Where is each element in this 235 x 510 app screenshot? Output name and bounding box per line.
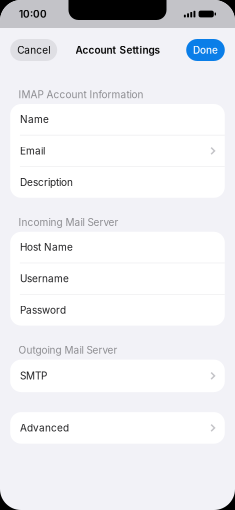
button[interactable]: Password [10,295,225,326]
staticText: Incoming Mail Server [18,216,118,228]
staticText: Outgoing Mail Server [18,344,117,356]
button[interactable]: Done [186,39,225,61]
staticText: Email [20,145,45,157]
staticText: Advanced [20,422,69,434]
staticText: Name [20,113,49,125]
button[interactable]: Description [10,167,225,198]
button[interactable]: SMTP [10,360,225,392]
staticText: 10:00 [19,8,47,20]
staticText: IMAP Account Information [18,88,143,101]
staticText: Done [193,44,218,56]
staticText: Username [20,273,69,285]
staticText: Cancel [17,44,50,56]
button[interactable]: Cancel [10,39,57,61]
button[interactable]: Name [10,104,225,135]
staticText: Account Settings [75,44,159,56]
staticText: Password [20,304,66,316]
staticText: Host Name [20,241,73,253]
button[interactable]: Email [10,135,225,166]
staticText: Description [20,176,73,188]
staticText: SMTP [20,370,47,382]
button[interactable]: Advanced [10,412,225,444]
button[interactable]: Host Name [10,232,225,263]
button[interactable]: Username [10,263,225,294]
